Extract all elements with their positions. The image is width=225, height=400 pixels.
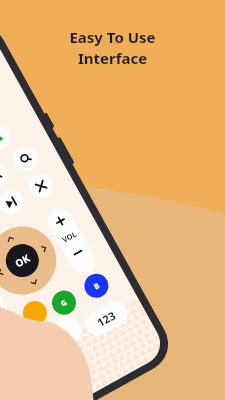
staticText: Easy To Use Interface	[0, 27, 225, 400]
